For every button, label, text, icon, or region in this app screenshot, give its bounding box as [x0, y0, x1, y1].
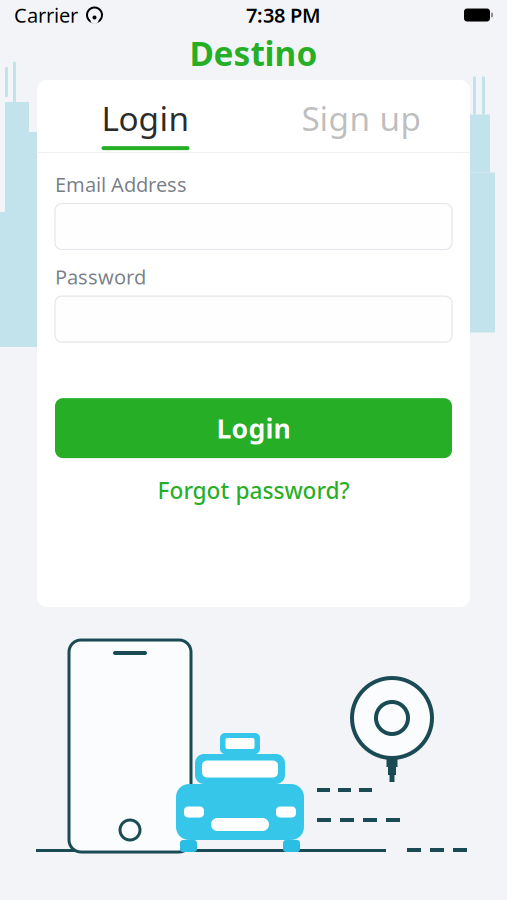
staticText: Email Address	[55, 171, 187, 198]
button[interactable]: Sign up	[253, 94, 469, 152]
staticText: Login	[216, 410, 290, 446]
staticText: Login	[101, 96, 189, 140]
button[interactable]	[55, 204, 452, 250]
staticText: 7:38 PM	[246, 2, 321, 28]
button[interactable]	[55, 296, 452, 342]
button[interactable]: Forgot password?	[55, 472, 452, 508]
staticText: Forgot password?	[157, 475, 349, 505]
staticText: Sign up	[301, 96, 421, 140]
button[interactable]: Login	[37, 94, 253, 152]
staticText: Destino	[189, 31, 317, 75]
button[interactable]: Login	[55, 398, 452, 458]
staticText: Password	[55, 264, 146, 290]
staticText: Carrier	[14, 2, 78, 28]
